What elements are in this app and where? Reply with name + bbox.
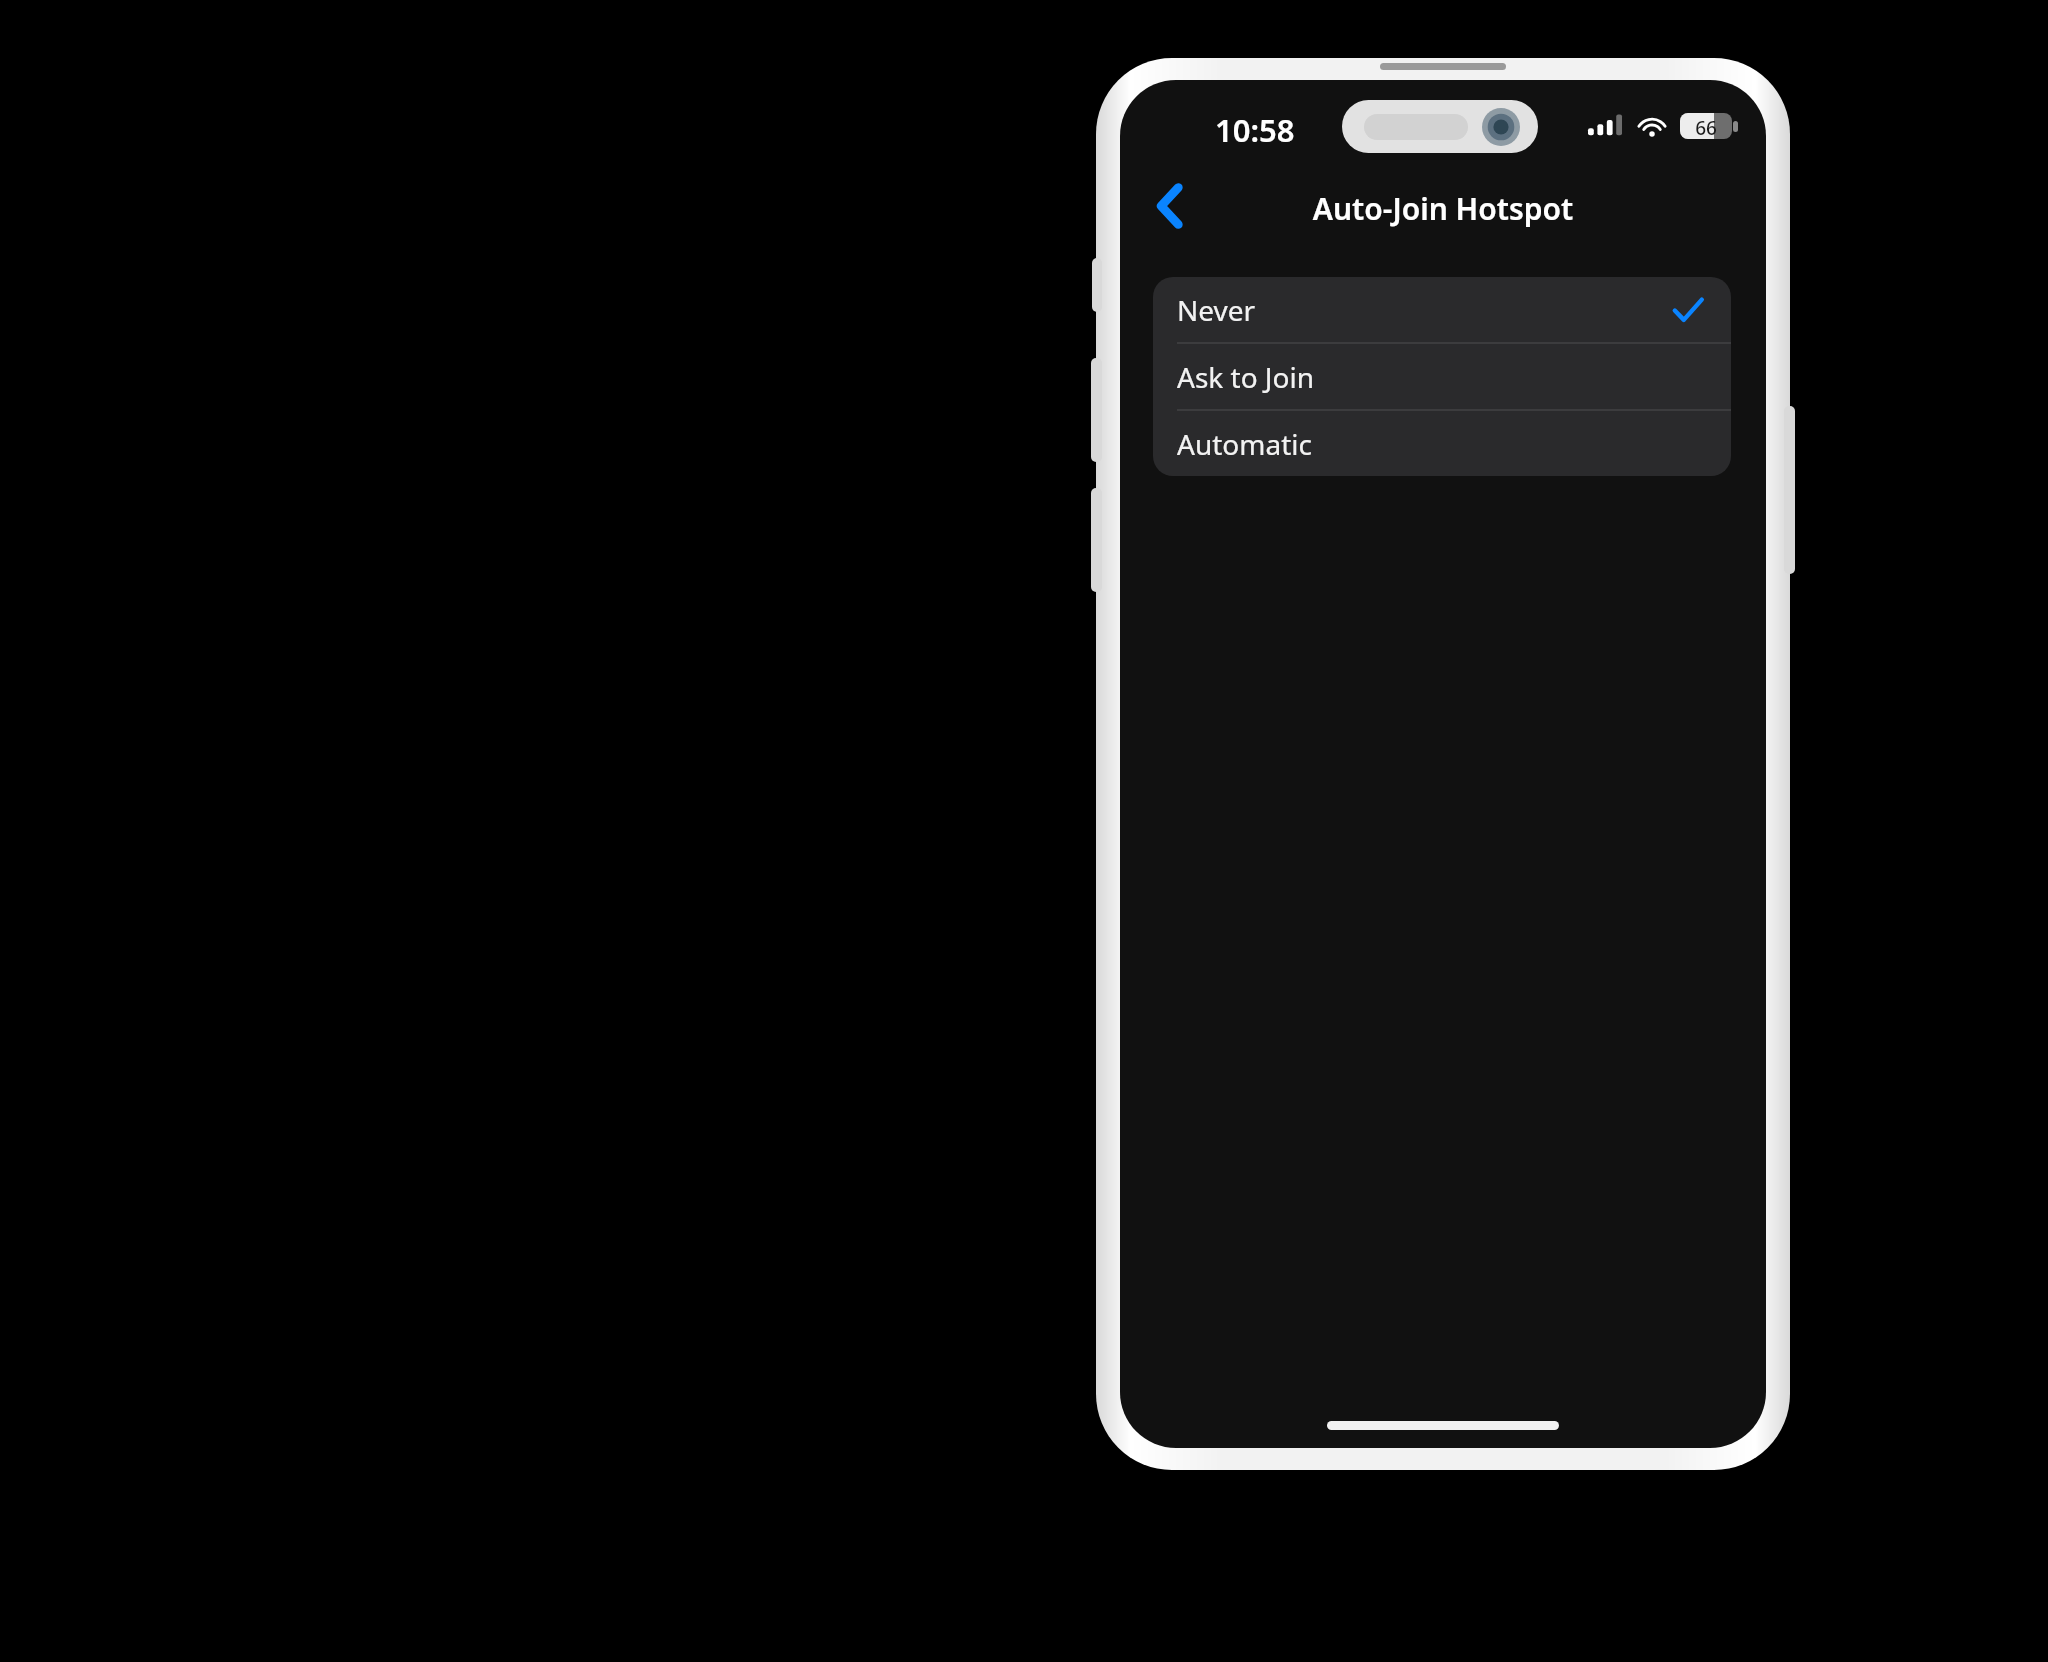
staticText: Automatic [1177,425,1312,463]
staticText: Auto-Join Hotspot [1120,188,1766,229]
staticText: 66 [1680,115,1732,139]
button[interactable]: Automatic [1153,411,1731,476]
staticText: Ask to Join [1177,358,1314,396]
button[interactable]: Ask to Join [1153,344,1731,409]
staticText: 10:58 [1215,109,1295,151]
staticText: Never [1177,291,1256,329]
button[interactable]: Never [1153,277,1731,342]
button[interactable]: Back [1134,170,1206,242]
